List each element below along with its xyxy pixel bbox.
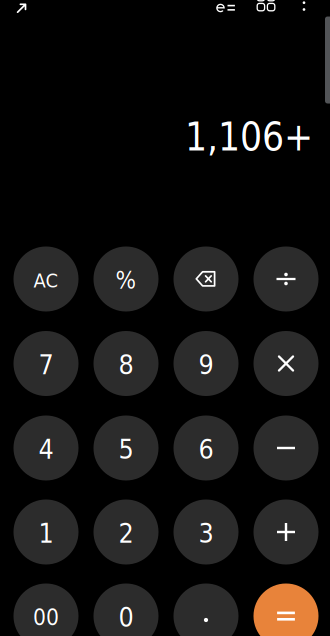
button[interactable]: Backspace [173, 246, 238, 311]
staticText: 8 [118, 349, 133, 380]
button[interactable]: Scientific functions [212, 0, 240, 19]
button[interactable]: 00 [13, 583, 78, 636]
staticText: 1 [38, 518, 53, 549]
button[interactable]: Divide [253, 246, 318, 311]
button[interactable]: 2 [93, 499, 158, 564]
button[interactable]: 9 [173, 331, 238, 396]
button[interactable]: All clear [13, 246, 78, 311]
staticText: 2 [118, 518, 133, 549]
button[interactable]: Minus [253, 415, 318, 480]
button[interactable]: 0 [93, 583, 158, 636]
button[interactable]: 3 [173, 499, 238, 564]
button[interactable]: 1 [13, 499, 78, 564]
staticText: 1,106+ [185, 114, 313, 159]
button[interactable]: More options [292, 0, 316, 15]
staticText: % [115, 266, 136, 294]
button[interactable]: 8 [93, 331, 158, 396]
button[interactable]: Equals [253, 583, 318, 636]
staticText: 4 [38, 434, 53, 465]
staticText: 00 [33, 604, 59, 631]
staticText: 5 [118, 434, 133, 465]
staticText: 6 [198, 434, 213, 465]
staticText: 7 [38, 349, 53, 380]
button[interactable]: Decimal point [173, 583, 238, 636]
button[interactable]: 7 [13, 331, 78, 396]
button[interactable]: 6 [173, 415, 238, 480]
button[interactable]: Multiply [253, 331, 318, 396]
staticText: 9 [198, 349, 213, 380]
button[interactable]: Percent [93, 246, 158, 311]
button[interactable]: 5 [93, 415, 158, 480]
button[interactable]: Plus [253, 499, 318, 564]
button[interactable]: 4 [13, 415, 78, 480]
staticText: 0 [118, 602, 133, 633]
button[interactable]: History [254, 0, 278, 14]
staticText: AC [33, 269, 58, 292]
staticText: 3 [198, 518, 213, 549]
button[interactable]: Expand [9, 0, 33, 17]
